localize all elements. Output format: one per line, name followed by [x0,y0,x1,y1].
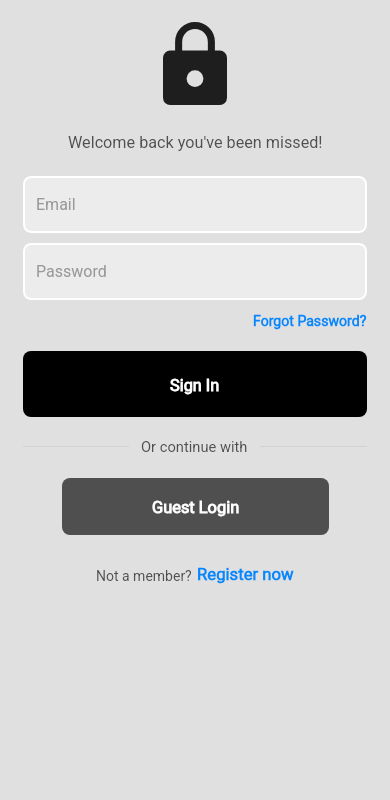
button[interactable]: Forgot Password? [253,313,367,330]
staticText: Not a member? [96,568,192,584]
other: Lock [163,22,227,105]
staticText: Welcome back you've been missed! [68,133,323,152]
button[interactable]: Guest Login [62,478,329,535]
button[interactable]: Password [23,243,367,300]
button[interactable]: Sign In [23,351,367,417]
staticText: Password [36,262,107,281]
staticText: Sign In [170,376,220,395]
staticText: Or continue with [141,438,248,455]
staticText: Guest Login [152,498,240,517]
button[interactable]: Register now [197,565,294,585]
button[interactable]: Email [23,176,367,233]
staticText: Email [36,195,76,214]
